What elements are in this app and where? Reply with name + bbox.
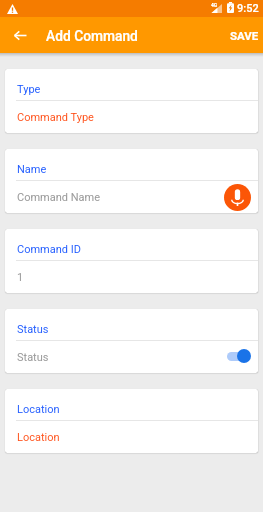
staticText: Add Command xyxy=(46,28,138,44)
staticText: Command Name xyxy=(17,191,101,204)
button[interactable]: Back xyxy=(3,18,37,52)
staticText: Name xyxy=(17,163,47,176)
staticText: Command Type xyxy=(17,111,94,124)
staticText: SAVE xyxy=(230,29,259,42)
staticText: Status xyxy=(17,323,49,336)
staticText: Location xyxy=(17,403,60,416)
staticText: Status xyxy=(17,351,49,364)
button[interactable]: Status toggle xyxy=(222,346,254,366)
staticText: 9:52 xyxy=(237,2,259,15)
staticText: 1 xyxy=(17,271,24,284)
staticText: Location xyxy=(17,431,60,444)
staticText: Type xyxy=(17,83,41,96)
staticText: Command ID xyxy=(17,243,81,256)
button[interactable]: SAVE xyxy=(220,21,263,50)
staticText: 4G xyxy=(211,2,218,8)
button[interactable]: Voice input xyxy=(224,184,251,211)
